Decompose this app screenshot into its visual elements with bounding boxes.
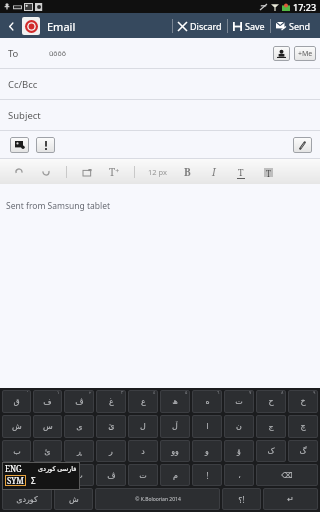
button[interactable]: Key ئ — [33, 440, 62, 462]
staticText: ب — [13, 447, 21, 456]
button[interactable]: Subject — [0, 100, 320, 130]
button[interactable]: Key ! — [192, 464, 222, 486]
button[interactable]: Choose contact — [273, 46, 290, 61]
button[interactable]: Cc/Bcc — [0, 69, 320, 99]
staticText: 17:23 — [293, 1, 317, 13]
button[interactable]: Key خ — [288, 390, 318, 413]
button[interactable]: Insert picture — [10, 137, 29, 153]
staticText: © K.Boloorian 2014 — [135, 496, 181, 503]
staticText: ڤ — [75, 397, 84, 406]
button[interactable]: Insert image — [80, 165, 94, 179]
button[interactable]: Key ێ — [96, 415, 126, 438]
button[interactable]: Key © K.Boloorian 2014 — [95, 488, 220, 510]
button[interactable]: Key ز — [2, 464, 31, 486]
button[interactable]: Key ف — [33, 390, 62, 413]
staticText: ٩ — [313, 390, 316, 395]
button[interactable]: Key س — [33, 415, 62, 438]
staticText: ﺵ — [69, 495, 79, 504]
button[interactable]: Key ی — [64, 415, 94, 438]
staticText: Sent from Samsung tablet — [6, 200, 111, 212]
button[interactable]: Key ع — [128, 390, 158, 413]
staticText: ٧ — [249, 390, 252, 395]
button[interactable]: Key ڵ — [160, 415, 190, 438]
button[interactable]: Key ت — [224, 390, 254, 413]
staticText: ێ — [108, 422, 115, 431]
button[interactable]: Key وو — [160, 440, 190, 462]
button[interactable]: Key ب — [2, 440, 31, 462]
button[interactable]: Underline — [234, 165, 248, 179]
button[interactable]: Key غ — [96, 390, 126, 413]
button[interactable]: Key و — [192, 440, 222, 462]
button[interactable]: Key ک — [256, 440, 286, 462]
staticText: ûôôô — [49, 49, 67, 59]
button[interactable]: Key ھ — [160, 390, 190, 413]
staticText: ` — [27, 390, 29, 396]
button[interactable]: Key ۆ — [224, 440, 254, 462]
button[interactable]: Discard — [173, 17, 227, 35]
button[interactable]: 12 px — [148, 167, 167, 177]
staticText: T⁺ — [109, 165, 120, 179]
button[interactable]: Save — [228, 17, 270, 35]
button[interactable]: Key د — [128, 440, 158, 462]
button[interactable]: Key ل — [128, 415, 158, 438]
staticText: غ — [109, 397, 114, 406]
staticText: To — [8, 47, 19, 60]
button[interactable]: Key ↵ — [263, 488, 318, 510]
staticText: I — [212, 165, 216, 179]
button[interactable]: Key ڕ — [64, 440, 94, 462]
button[interactable]: Undo — [12, 165, 26, 179]
staticText: ۆ — [237, 447, 241, 456]
button[interactable]: Send — [271, 17, 316, 35]
button[interactable]: Key م — [160, 464, 190, 486]
button[interactable]: Key ر — [96, 440, 126, 462]
staticText: ز — [15, 471, 19, 480]
button[interactable]: Redo — [39, 165, 53, 179]
staticText: فارسی کوردی — [38, 464, 77, 473]
staticText: ق — [13, 397, 20, 406]
button[interactable]: Key ژ — [33, 464, 62, 486]
button[interactable]: Key ڤ — [96, 464, 126, 486]
button[interactable]: Key کوردی — [2, 488, 52, 510]
staticText: ج — [268, 422, 274, 431]
button[interactable]: Key گ — [288, 440, 318, 462]
button[interactable]: Key ح — [256, 390, 286, 413]
button[interactable]: Key پ — [64, 464, 94, 486]
button[interactable]: Key ق — [2, 390, 31, 413]
staticText: ⌫ — [281, 471, 293, 480]
staticText: ت — [139, 471, 147, 480]
button[interactable]: Key ﺵ — [54, 488, 93, 510]
button[interactable]: Key ⌫ — [256, 464, 318, 486]
staticText: +Me — [298, 49, 313, 59]
staticText: ٤ — [153, 390, 156, 395]
staticText: چ — [300, 422, 306, 431]
button[interactable]: Key ن — [224, 415, 254, 438]
staticText: ENG — [5, 463, 22, 474]
staticText: Σ — [31, 475, 36, 486]
button[interactable]: Key ش — [2, 415, 31, 438]
button[interactable]: Email app icon — [22, 17, 40, 35]
button[interactable]: Font size — [107, 165, 121, 179]
staticText: T — [266, 168, 271, 177]
staticText: ↵ — [287, 495, 294, 504]
staticText: ! — [206, 470, 209, 481]
button[interactable]: ENG — [2, 462, 80, 490]
button[interactable]: Key ڤ — [64, 390, 94, 413]
button[interactable]: Back — [0, 15, 22, 37]
staticText: ت — [235, 397, 243, 406]
button[interactable]: Italic — [207, 165, 221, 179]
button[interactable]: Highlight — [261, 165, 275, 179]
button[interactable]: Attach — [293, 137, 312, 153]
button[interactable]: +Me — [294, 46, 316, 61]
button[interactable]: Key ج — [256, 415, 286, 438]
staticText: ھ — [172, 397, 178, 406]
button[interactable]: Key ە — [192, 390, 222, 413]
button[interactable]: Key ، — [224, 464, 254, 486]
button[interactable]: Key ا — [192, 415, 222, 438]
button[interactable]: Key چ — [288, 415, 318, 438]
staticText: ڵ — [172, 422, 178, 431]
button[interactable]: Key ت — [128, 464, 158, 486]
button[interactable]: Priority — [36, 137, 55, 153]
staticText: ٦ — [217, 390, 220, 395]
button[interactable]: Key ؟! — [222, 488, 261, 510]
button[interactable]: Bold — [180, 165, 194, 179]
